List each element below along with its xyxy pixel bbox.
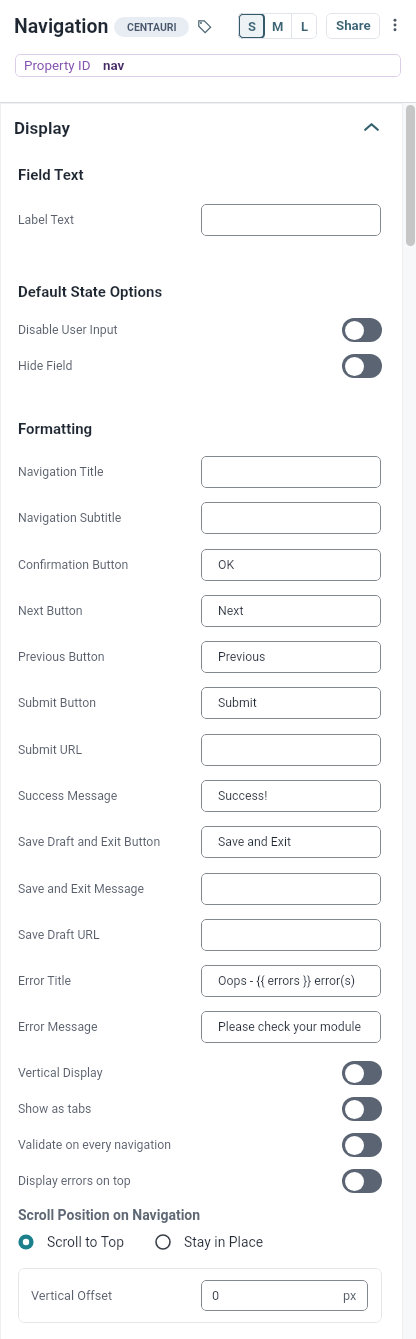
staticText: Next	[218, 604, 244, 618]
button[interactable]: Submit	[201, 687, 381, 719]
button[interactable]: Previous	[201, 641, 381, 673]
staticText: Navigation Subtitle	[18, 511, 122, 525]
button[interactable]	[201, 204, 381, 236]
button[interactable]: Tags	[194, 16, 214, 36]
staticText: Disable User Input	[18, 323, 118, 337]
button[interactable]: Display	[0, 103, 403, 153]
button[interactable]	[201, 919, 381, 951]
staticText: Field Text	[18, 166, 84, 184]
staticText: L	[301, 19, 309, 34]
staticText: Navigation	[14, 15, 109, 38]
staticText: Oops - {{ errors }} error(s)	[218, 974, 356, 988]
button[interactable]	[201, 734, 381, 766]
staticText: Previous	[218, 650, 266, 664]
staticText: CENTAURI	[127, 21, 177, 33]
other: Collapse Display section	[364, 123, 379, 131]
staticText: Save Draft and Exit Button	[18, 835, 161, 849]
button[interactable]: Vertical Display	[342, 1061, 382, 1085]
staticText: M	[272, 19, 284, 34]
staticText: Label Text	[18, 213, 74, 227]
staticText: Hide Field	[18, 359, 73, 373]
button[interactable]: Save and Exit	[201, 826, 381, 858]
staticText: Formatting	[18, 420, 93, 438]
button[interactable]: Display errors on top	[342, 1169, 382, 1193]
button[interactable]: M	[265, 13, 291, 39]
staticText: px	[343, 1288, 357, 1303]
button[interactable]: Stay in Place	[155, 1230, 264, 1254]
staticText: Display errors on top	[18, 1174, 131, 1188]
button[interactable]	[201, 873, 381, 905]
button[interactable]: Property ID	[15, 54, 401, 77]
staticText: Please check your module	[218, 1020, 362, 1034]
button[interactable]: Scroll to Top	[18, 1230, 125, 1254]
staticText: Error Title	[18, 974, 72, 988]
button[interactable]: Success!	[201, 780, 381, 812]
staticText: Confirmation Button	[18, 558, 129, 572]
staticText: Default State Options	[18, 283, 163, 301]
staticText: Success Message	[18, 789, 118, 803]
button[interactable]: Next	[201, 595, 381, 627]
staticText: Submit Button	[18, 696, 97, 710]
staticText: 0	[212, 1288, 220, 1303]
button[interactable]: CENTAURI	[114, 17, 189, 37]
staticText: Error Message	[18, 1020, 98, 1034]
button[interactable]: More options	[384, 14, 406, 36]
button[interactable]	[201, 502, 381, 534]
button[interactable]: Show as tabs	[342, 1097, 382, 1121]
staticText: Success!	[218, 789, 268, 803]
staticText: Scroll Position on Navigation	[18, 1207, 201, 1223]
staticText: Show as tabs	[18, 1102, 92, 1116]
staticText: Validate on every navigation	[18, 1138, 172, 1152]
staticText: Scroll to Top	[47, 1234, 125, 1250]
button[interactable]: Hide Field	[342, 354, 382, 378]
staticText: Navigation Title	[18, 465, 104, 479]
staticText: OK	[218, 558, 235, 572]
button[interactable]: L	[292, 13, 317, 39]
staticText: Previous Button	[18, 650, 105, 664]
staticText: Display	[14, 118, 70, 138]
staticText: Submit URL	[18, 743, 83, 757]
button[interactable]: Please check your module	[201, 1011, 381, 1043]
staticText: nav	[103, 58, 125, 74]
button[interactable]: Validate on every navigation	[342, 1133, 382, 1157]
button[interactable]: Oops - {{ errors }} error(s)	[201, 965, 381, 997]
staticText: Submit	[218, 696, 257, 710]
button[interactable]: Disable User Input	[342, 318, 382, 342]
staticText: Next Button	[18, 604, 83, 618]
staticText: Vertical Display	[18, 1066, 103, 1080]
staticText: Save and Exit Message	[18, 882, 145, 896]
staticText: S	[248, 19, 256, 34]
staticText: Save and Exit	[218, 835, 291, 849]
button[interactable]: OK	[201, 549, 381, 581]
button[interactable]: 0	[201, 1280, 368, 1311]
button[interactable]	[201, 456, 381, 488]
staticText: Stay in Place	[184, 1234, 264, 1250]
staticText: Share	[336, 18, 371, 34]
staticText: Vertical Offset	[31, 1288, 113, 1303]
button[interactable]: Share	[326, 13, 380, 39]
button[interactable]: S	[238, 13, 265, 39]
staticText: Save Draft URL	[18, 928, 100, 942]
staticText: Property ID	[24, 58, 91, 74]
